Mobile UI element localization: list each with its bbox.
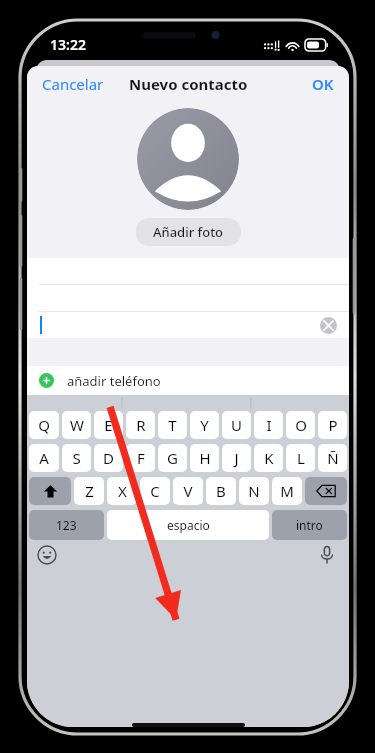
staticText: Q bbox=[38, 415, 50, 435]
button[interactable]: Emoji bbox=[37, 545, 57, 565]
button[interactable]: R bbox=[126, 411, 155, 439]
button[interactable]: H bbox=[190, 444, 219, 472]
button[interactable]: Cancelar bbox=[27, 68, 119, 100]
button[interactable]: Q bbox=[29, 411, 59, 439]
button[interactable]: K bbox=[254, 444, 283, 472]
button[interactable]: Y bbox=[190, 411, 219, 439]
button[interactable]: Borrar texto bbox=[27, 312, 349, 338]
staticText: X bbox=[118, 481, 127, 501]
button[interactable]: añadir teléfono bbox=[27, 366, 349, 395]
button[interactable]: A bbox=[29, 444, 59, 472]
button[interactable]: X bbox=[107, 477, 137, 505]
button[interactable]: D bbox=[94, 444, 123, 472]
staticText: I bbox=[266, 415, 272, 435]
button[interactable]: L bbox=[286, 444, 315, 472]
button[interactable]: G bbox=[158, 444, 187, 472]
button[interactable]: W bbox=[62, 411, 91, 439]
staticText: Ñ bbox=[327, 448, 339, 468]
staticText: L bbox=[297, 448, 305, 468]
staticText: E bbox=[104, 415, 113, 435]
button[interactable]: I bbox=[254, 411, 283, 439]
staticText: R bbox=[136, 415, 146, 435]
button[interactable]: Z bbox=[74, 477, 104, 505]
staticText: OK bbox=[312, 74, 334, 94]
button[interactable]: J bbox=[222, 444, 251, 472]
staticText: J bbox=[234, 448, 239, 468]
button[interactable]: T bbox=[158, 411, 187, 439]
staticText: U bbox=[231, 415, 242, 435]
button[interactable]: Dictado bbox=[317, 545, 337, 565]
button[interactable]: V bbox=[173, 477, 203, 505]
button[interactable]: 123 bbox=[29, 510, 104, 540]
staticText: 13:22 bbox=[50, 35, 86, 54]
staticText: D bbox=[103, 448, 114, 468]
staticText: N bbox=[248, 481, 260, 501]
staticText: intro bbox=[296, 517, 323, 533]
staticText: C bbox=[150, 481, 160, 501]
staticText: W bbox=[70, 415, 84, 435]
staticText: S bbox=[72, 448, 81, 468]
staticText: F bbox=[137, 448, 145, 468]
staticText: espacio bbox=[167, 517, 210, 533]
button[interactable]: U bbox=[222, 411, 251, 439]
button[interactable]: espacio bbox=[107, 510, 269, 540]
staticText: P bbox=[328, 415, 338, 435]
button[interactable]: Ñ bbox=[318, 444, 347, 472]
staticText: Z bbox=[85, 481, 94, 501]
staticText: H bbox=[199, 448, 211, 468]
button[interactable] bbox=[137, 108, 239, 210]
button[interactable]: S bbox=[62, 444, 91, 472]
staticText: B bbox=[216, 481, 226, 501]
button[interactable]: E bbox=[94, 411, 123, 439]
button[interactable]: OK bbox=[297, 68, 349, 100]
button[interactable]: Mayúsculas bbox=[29, 477, 71, 505]
button[interactable]: F bbox=[126, 444, 155, 472]
button[interactable]: C bbox=[140, 477, 170, 505]
staticText: Y bbox=[200, 415, 209, 435]
button[interactable]: Añadir foto bbox=[136, 218, 241, 246]
staticText: T bbox=[168, 415, 177, 435]
button[interactable]: Borrar texto bbox=[320, 317, 337, 334]
button[interactable]: B bbox=[206, 477, 236, 505]
button[interactable]: Retroceso bbox=[305, 477, 347, 505]
staticText: A bbox=[39, 448, 49, 468]
button[interactable]: N bbox=[239, 477, 269, 505]
staticText: Añadir foto bbox=[153, 223, 224, 241]
staticText: K bbox=[264, 448, 274, 468]
staticText: M bbox=[280, 481, 294, 501]
staticText: 123 bbox=[56, 517, 77, 533]
button[interactable]: P bbox=[318, 411, 347, 439]
staticText: G bbox=[167, 448, 178, 468]
staticText: Cancelar bbox=[42, 74, 104, 94]
button[interactable]: O bbox=[286, 411, 315, 439]
staticText: O bbox=[295, 415, 307, 435]
staticText: Nuevo contacto bbox=[129, 74, 248, 94]
button[interactable]: intro bbox=[272, 510, 347, 540]
staticText: V bbox=[183, 481, 193, 501]
button[interactable]: M bbox=[272, 477, 302, 505]
staticText: añadir teléfono bbox=[67, 372, 161, 390]
